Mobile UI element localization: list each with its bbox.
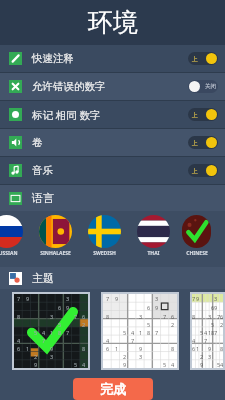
staticText: 关闭 (205, 83, 216, 90)
staticText: 7 (155, 329, 159, 336)
button[interactable]: On (188, 108, 218, 121)
staticText: 1 (115, 345, 119, 352)
staticText: 5 (211, 321, 214, 328)
staticText: 上 (192, 111, 198, 119)
staticText: 1 (139, 329, 143, 336)
staticText: 9 (214, 304, 217, 311)
button[interactable]: 音乐 (0, 157, 225, 184)
staticText: 2 (123, 353, 127, 360)
staticText: 5 (147, 321, 151, 328)
staticText: 5 (34, 329, 38, 336)
staticText: 6 (211, 304, 214, 311)
staticText: 9 (200, 361, 204, 368)
staticText: 9 (50, 345, 54, 352)
staticText: 6 (220, 313, 223, 320)
staticText: 5 (163, 361, 167, 368)
staticText: 2 (200, 353, 204, 360)
button[interactable]: THAI (133, 215, 173, 257)
staticText: 上 (192, 139, 198, 147)
staticText: 8 (17, 313, 21, 320)
staticText: CHINESE (186, 250, 208, 257)
button[interactable]: 7 (103, 294, 177, 368)
staticText: 9 (123, 361, 127, 368)
staticText: 8 (171, 345, 175, 352)
button[interactable]: 完成 (73, 378, 153, 400)
staticText: 上 (192, 55, 198, 63)
staticText: 3 (208, 313, 211, 320)
staticText: 7 (163, 313, 167, 320)
staticText: 音乐 (32, 164, 53, 177)
button[interactable]: SWEDISH (84, 215, 124, 257)
button[interactable]: 语言 (0, 185, 225, 211)
staticText: 语言 (32, 191, 54, 205)
staticText: THAI (147, 250, 160, 257)
staticText: 9 (155, 304, 159, 311)
staticText: 2 (171, 321, 175, 328)
staticText: 8 (192, 313, 196, 320)
staticText: 完成 (100, 381, 126, 397)
staticText: 7 (17, 295, 21, 302)
staticText: 9 (115, 295, 119, 302)
staticText: 3 (214, 295, 217, 302)
button[interactable]: 卷 (0, 129, 225, 156)
staticText: 4 (82, 361, 86, 368)
staticText: 7 (192, 295, 196, 302)
staticText: 4 (220, 361, 223, 368)
staticText: 2 (34, 353, 38, 360)
staticText: 5 (58, 321, 62, 328)
staticText: 环境 (88, 7, 138, 38)
staticText: SWEDISH (93, 250, 116, 257)
button[interactable]: CHINESE (182, 215, 211, 257)
staticText: 6 (17, 345, 21, 352)
button[interactable]: 标记 相同 数字 (0, 101, 225, 128)
staticText: 9 (208, 345, 211, 352)
staticText: 4 (204, 329, 208, 336)
staticText: 6 (147, 304, 151, 311)
staticText: 5 (123, 329, 127, 336)
button[interactable]: On (188, 136, 218, 149)
button[interactable]: SINHALAESE (35, 215, 75, 257)
staticText: 4 (17, 337, 21, 344)
button[interactable]: 快速注释 (0, 45, 225, 72)
staticText: 9 (196, 295, 200, 302)
button[interactable]: On (188, 164, 218, 177)
staticText: RUSSIAN (0, 250, 18, 257)
button[interactable]: 7 (14, 294, 88, 368)
button[interactable]: RUSSIAN (0, 215, 26, 257)
staticText: 6 (58, 304, 62, 311)
staticText: 快速注释 (32, 52, 74, 65)
staticText: 7 (214, 329, 217, 336)
staticText: 3 (66, 295, 70, 302)
button[interactable]: 允许错误的数字 (0, 73, 225, 100)
staticText: 7 (42, 337, 46, 344)
staticText: 8 (220, 345, 223, 352)
staticText: 主题 (32, 271, 54, 285)
staticText: 8 (58, 329, 62, 336)
staticText: 3 (208, 353, 211, 360)
staticText: 7 (131, 337, 135, 344)
staticText: 1 (50, 329, 54, 336)
staticText: 8 (211, 329, 214, 336)
staticText: 6 (192, 345, 196, 352)
staticText: 2 (220, 321, 223, 328)
staticText: 3 (139, 353, 143, 360)
button[interactable]: 7 (192, 294, 223, 368)
staticText: 允许错误的数字 (32, 80, 106, 93)
staticText: 7 (204, 337, 208, 344)
staticText: 卷 (32, 136, 43, 149)
staticText: 4 (42, 329, 46, 336)
staticText: 9 (139, 345, 143, 352)
button[interactable]: 主题 (0, 267, 225, 289)
staticText: 8 (106, 313, 110, 320)
staticText: 标记 相同 数字 (32, 108, 101, 122)
staticText: 5 (217, 361, 220, 368)
staticText: 4 (131, 329, 135, 336)
staticText: 3 (50, 313, 54, 320)
staticText: 3 (50, 353, 54, 360)
staticText: 8 (82, 345, 86, 352)
staticText: 3 (155, 295, 159, 302)
button[interactable]: On (188, 52, 218, 65)
staticText: 6 (82, 313, 86, 320)
staticText: 9 (34, 361, 38, 368)
button[interactable]: Off (188, 80, 218, 93)
